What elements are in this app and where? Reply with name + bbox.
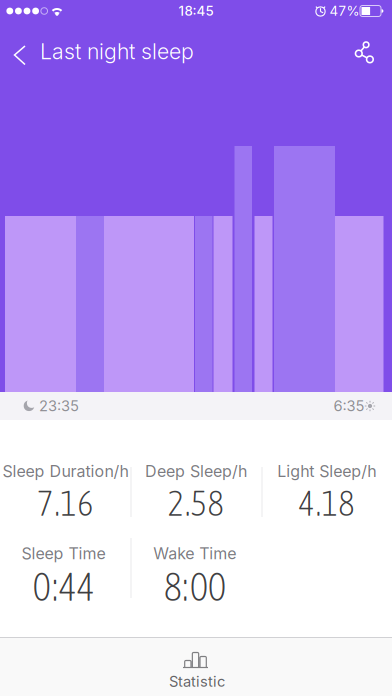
staticText: Statistic <box>169 673 225 690</box>
button[interactable]: Back <box>0 33 44 77</box>
staticText: 4.18 <box>298 483 355 523</box>
staticText: Last night sleep <box>40 39 194 64</box>
button[interactable]: Share <box>342 32 386 76</box>
button[interactable]: Statistic <box>0 637 392 696</box>
staticText: 8:00 <box>164 564 226 609</box>
staticText: Wake Time <box>153 544 236 563</box>
staticText: Sleep Time <box>21 544 105 563</box>
staticText: 18:45 <box>178 3 213 19</box>
staticText: 2.58 <box>167 483 224 523</box>
staticText: 0:44 <box>32 564 94 609</box>
staticText: 7.16 <box>37 483 94 523</box>
staticText: 47% <box>329 3 359 19</box>
staticText: Light Sleep/h <box>277 462 376 481</box>
staticText: Deep Sleep/h <box>145 462 247 481</box>
staticText: 6:35 <box>333 397 364 415</box>
staticText: 23:35 <box>39 397 79 415</box>
staticText: Sleep Duration/h <box>2 462 128 481</box>
